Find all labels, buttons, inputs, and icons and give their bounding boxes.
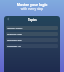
staticText: Master your logic [0,2,64,7]
button[interactable]: Back [6,17,10,21]
staticText: Deduction Sets [7,39,22,42]
button[interactable]: Probability 101 [6,44,58,48]
button[interactable]: Sequence Logic [6,32,58,36]
button[interactable]: Number Theory [6,26,58,30]
button[interactable]: Deduction Sets [6,38,58,42]
staticText: Topics [28,18,37,22]
staticText: with every step [0,7,64,11]
staticText: Sequence Logic [7,33,22,36]
staticText: Probability 101 [7,45,22,48]
staticText: Number Theory [7,27,23,30]
